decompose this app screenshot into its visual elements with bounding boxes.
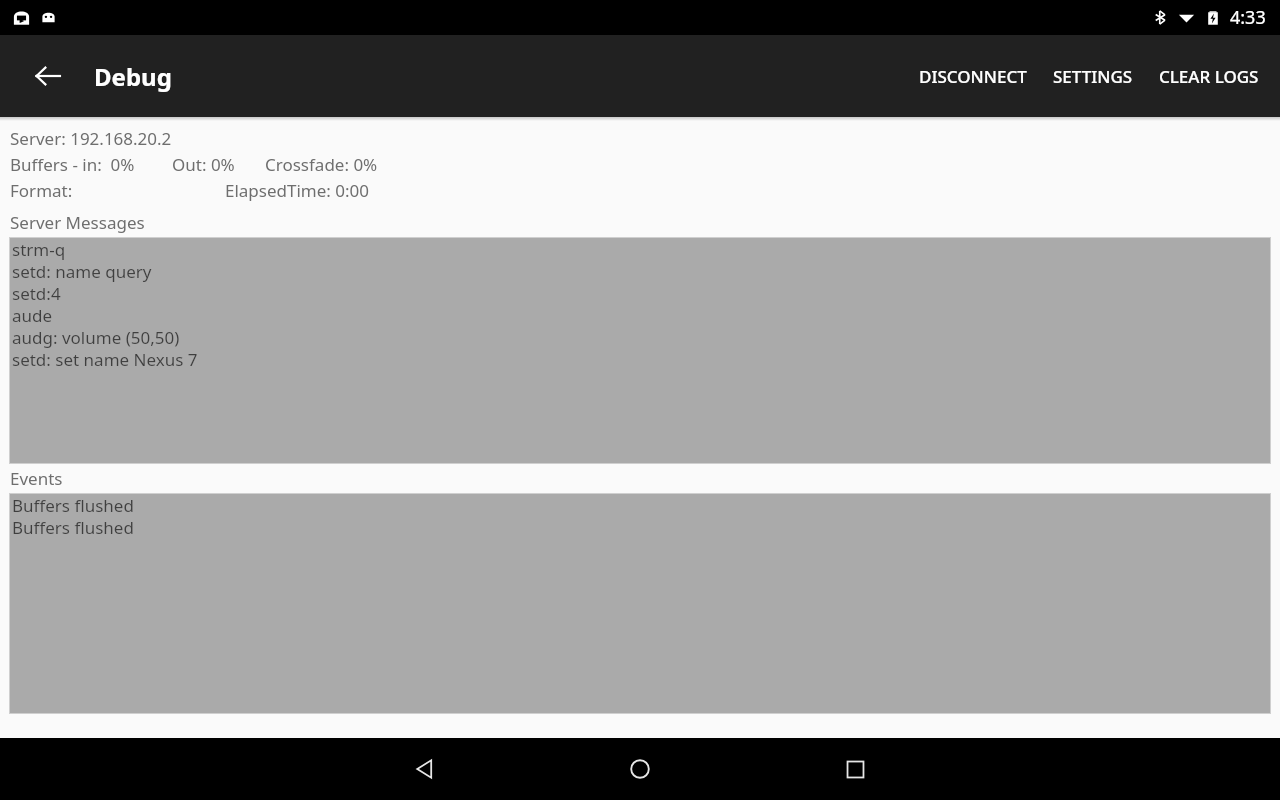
button[interactable]: Back xyxy=(398,743,450,795)
button[interactable]: Home xyxy=(614,743,666,795)
staticText: Format: xyxy=(10,179,73,202)
staticText: strm-q xyxy=(12,238,66,260)
staticText: setd:4 xyxy=(12,282,61,304)
staticText: Buffers - in: 0% xyxy=(10,153,135,176)
button[interactable]: SETTINGS xyxy=(1040,51,1146,102)
staticText: SETTINGS xyxy=(1053,65,1133,88)
staticText: Events xyxy=(10,467,63,490)
staticText: DISCONNECT xyxy=(919,65,1027,88)
staticText: CLEAR LOGS xyxy=(1159,65,1259,88)
button[interactable]: DISCONNECT xyxy=(906,51,1040,102)
staticText: Crossfade: 0% xyxy=(265,153,378,176)
staticText: Buffers flushed xyxy=(12,494,134,516)
button[interactable]: Recent apps xyxy=(829,743,881,795)
staticText: Server: 192.168.20.2 xyxy=(10,127,172,150)
staticText: setd: name query xyxy=(12,260,152,282)
staticText: Server Messages xyxy=(10,211,145,234)
button[interactable]: Buffers flushed xyxy=(9,493,1271,714)
button[interactable]: Back xyxy=(22,50,74,102)
button[interactable]: strm-q xyxy=(9,237,1271,464)
staticText: 4:33 xyxy=(1230,5,1266,30)
staticText: ElapsedTime: 0:00 xyxy=(225,179,370,202)
staticText: Debug xyxy=(94,60,172,93)
staticText: setd: set name Nexus 7 xyxy=(12,348,198,370)
staticText: aude xyxy=(12,304,53,326)
button[interactable]: CLEAR LOGS xyxy=(1146,51,1272,102)
staticText: Buffers flushed xyxy=(12,516,134,538)
staticText: Out: 0% xyxy=(172,153,235,176)
staticText: audg: volume (50,50) xyxy=(12,326,180,348)
